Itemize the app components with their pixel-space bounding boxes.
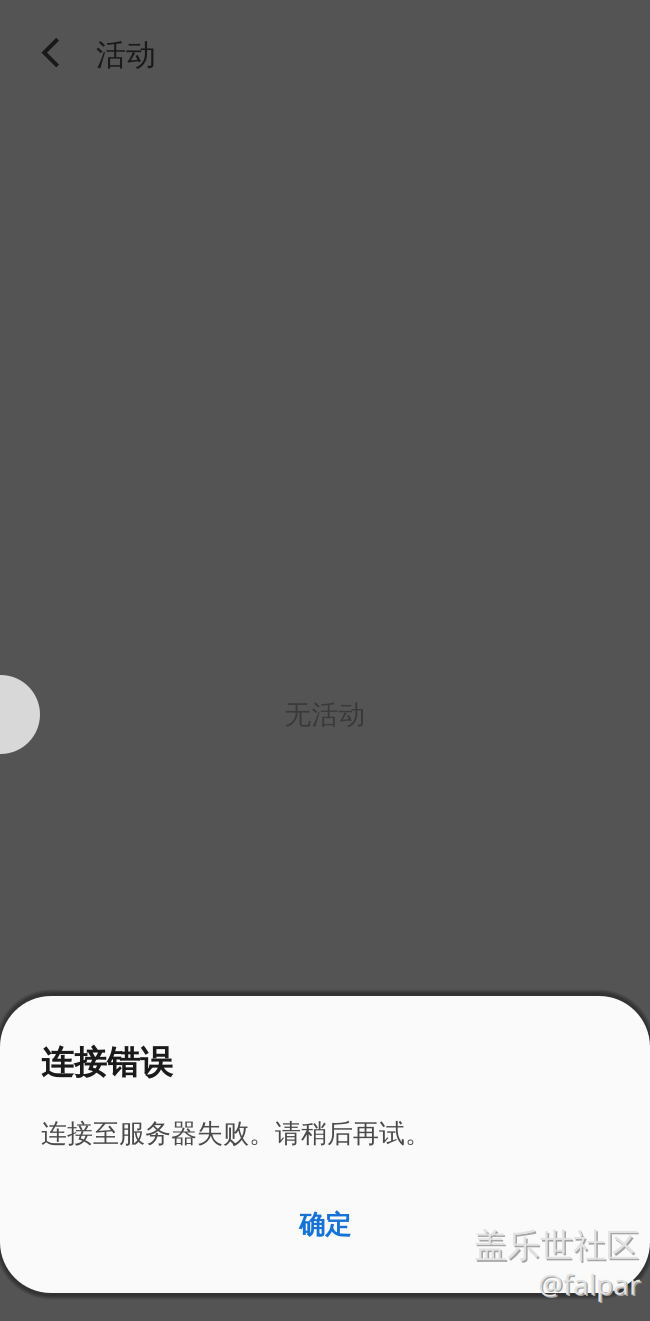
staticText: 活动	[96, 36, 156, 74]
staticText: 连接至服务器失败。请稍后再试。	[41, 1117, 431, 1150]
staticText: 无活动	[284, 698, 365, 732]
staticText: 盖乐世社区	[474, 1225, 639, 1267]
staticText: 确定	[299, 1208, 351, 1241]
staticText: @falpar	[539, 1266, 641, 1304]
staticText: 连接错误	[41, 1042, 173, 1083]
staticText: 盖乐世社区	[476, 1227, 641, 1268]
button[interactable]: 确定	[41, 1202, 609, 1248]
staticText: @falpar	[538, 1265, 640, 1303]
button[interactable]: 返回 活动	[0, 13, 180, 97]
